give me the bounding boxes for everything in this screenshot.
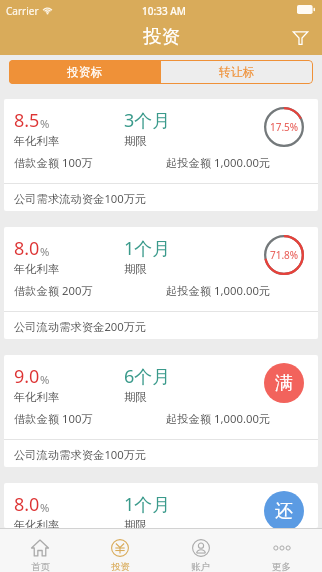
staticText: 6个月	[124, 364, 171, 389]
staticText: 公司需求流动资金100万元	[14, 191, 147, 206]
staticText: 投资	[111, 561, 130, 572]
staticText: 借款金额 100万	[14, 411, 93, 426]
staticText: 17.5%	[270, 120, 299, 134]
staticText: 8.0	[14, 492, 40, 517]
button[interactable]: 8.0	[4, 227, 318, 339]
staticText: 更多	[272, 561, 291, 572]
button[interactable]: 更多	[241, 529, 322, 572]
button[interactable]: 9.0	[4, 355, 318, 467]
staticText: Carrier	[6, 4, 39, 18]
staticText: 起投金额 1,000.00元	[166, 155, 271, 170]
staticText: 71.8%	[270, 248, 299, 262]
staticText: %	[40, 500, 50, 515]
button[interactable]: 投资标	[9, 60, 161, 84]
button[interactable]: 投资	[80, 529, 160, 572]
button[interactable]: 首页	[0, 529, 80, 572]
staticText: 年化利率	[14, 134, 60, 148]
staticText: %	[40, 372, 50, 387]
staticText: 1个月	[124, 236, 171, 261]
staticText: 10:33 AM	[142, 4, 186, 18]
staticText: 账户	[191, 561, 210, 572]
button[interactable]: 8.5	[4, 99, 318, 211]
button[interactable]: 8.0	[4, 483, 318, 528]
staticText: 首页	[31, 561, 50, 572]
staticText: 起投金额 1,000.00元	[166, 283, 271, 298]
staticText: 期限	[124, 518, 147, 528]
button[interactable]: 账户	[160, 529, 241, 572]
staticText: 转让标	[219, 65, 255, 80]
staticText: 还	[275, 500, 293, 523]
staticText: 期限	[124, 390, 147, 404]
staticText: 8.5	[14, 108, 40, 133]
staticText: 借款金额 100万	[14, 155, 93, 170]
staticText: %	[40, 116, 50, 131]
staticText: 期限	[124, 262, 147, 276]
staticText: %	[40, 244, 50, 259]
staticText: 投资	[143, 25, 180, 48]
staticText: 1个月	[124, 492, 171, 517]
staticText: 起投金额 1,000.00元	[166, 411, 271, 426]
staticText: 借款金额 200万	[14, 283, 93, 298]
staticText: 满	[275, 372, 293, 395]
staticText: 年化利率	[14, 390, 60, 404]
staticText: 投资标	[67, 65, 103, 80]
staticText: 3个月	[124, 108, 171, 133]
button[interactable]: 转让标	[161, 60, 313, 84]
staticText: 9.0	[14, 364, 40, 389]
staticText: 期限	[124, 134, 147, 148]
staticText: 年化利率	[14, 262, 60, 276]
button[interactable]: Filter	[286, 24, 314, 52]
staticText: 8.0	[14, 236, 40, 261]
staticText: 公司流动需求资金100万元	[14, 447, 147, 462]
staticText: 公司流动需求资金200万元	[14, 319, 147, 334]
staticText: 年化利率	[14, 518, 60, 528]
